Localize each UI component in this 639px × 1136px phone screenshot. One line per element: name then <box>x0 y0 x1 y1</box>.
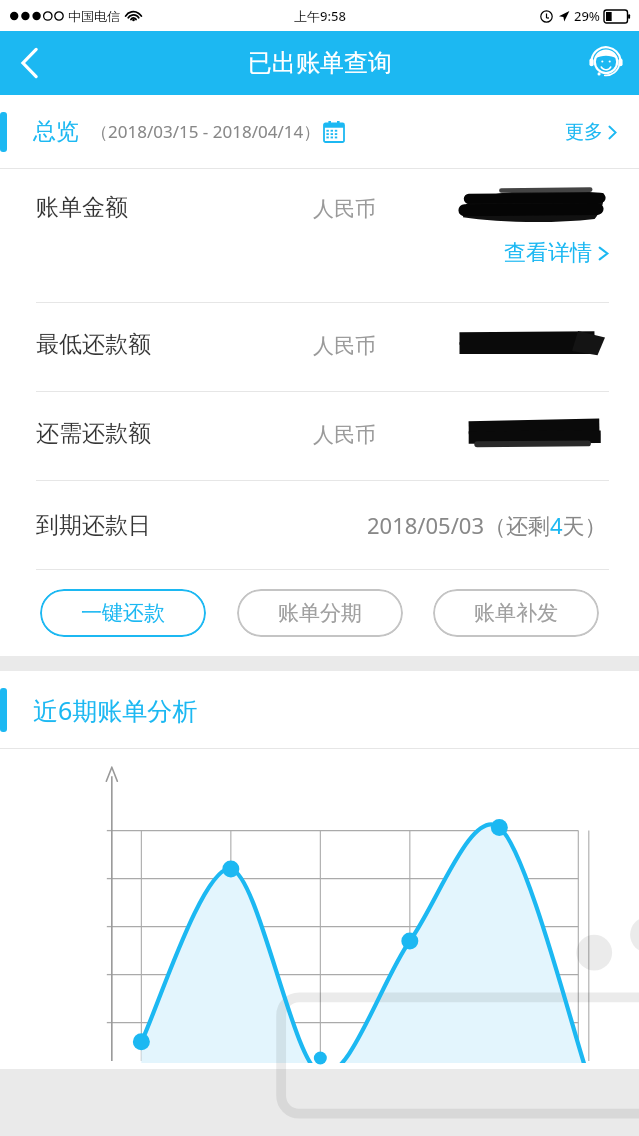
staticText: （2018/03/15 - 2018/04/14） <box>91 120 321 143</box>
button[interactable]: 最低还款额 <box>0 303 639 391</box>
staticText: 29% <box>574 7 600 25</box>
staticText: 中国电信 <box>68 8 120 24</box>
staticText: 一键还款 <box>81 600 165 626</box>
staticText: 已出账单查询 <box>248 48 392 78</box>
staticText: 账单分期 <box>278 600 362 626</box>
button[interactable]: 总览 <box>0 95 639 168</box>
button[interactable]: 到期还款日 <box>0 481 639 569</box>
button[interactable]: 账单分期 <box>237 589 403 637</box>
staticText: 账单金额 <box>36 193 128 222</box>
button[interactable]: 账单金额 <box>0 169 639 302</box>
staticText: 上午9:58 <box>294 7 346 25</box>
staticText: 人民币 <box>313 196 376 222</box>
staticText: 2018/05/03（还剩4天） <box>367 510 607 540</box>
staticText: 近6期账单分析 <box>33 693 198 727</box>
staticText: 人民币 <box>313 422 376 448</box>
staticText: 查看详情 <box>504 239 592 267</box>
button[interactable]: 一键还款 <box>40 589 206 637</box>
button[interactable]: Customer service <box>573 31 639 95</box>
button[interactable]: 近6期账单分析 <box>0 671 639 748</box>
button[interactable]: 查看详情 <box>504 239 609 267</box>
staticText: 最低还款额 <box>36 330 151 359</box>
button[interactable]: 还需还款额 <box>0 392 639 480</box>
staticText: 还需还款额 <box>36 419 151 448</box>
button[interactable]: Back <box>0 31 60 95</box>
staticText: 到期还款日 <box>36 511 151 540</box>
staticText: 账单补发 <box>474 600 558 626</box>
staticText: 人民币 <box>313 333 376 359</box>
staticText: 总览 <box>33 117 79 146</box>
staticText: 更多 <box>565 120 603 144</box>
button[interactable]: 账单补发 <box>433 589 599 637</box>
